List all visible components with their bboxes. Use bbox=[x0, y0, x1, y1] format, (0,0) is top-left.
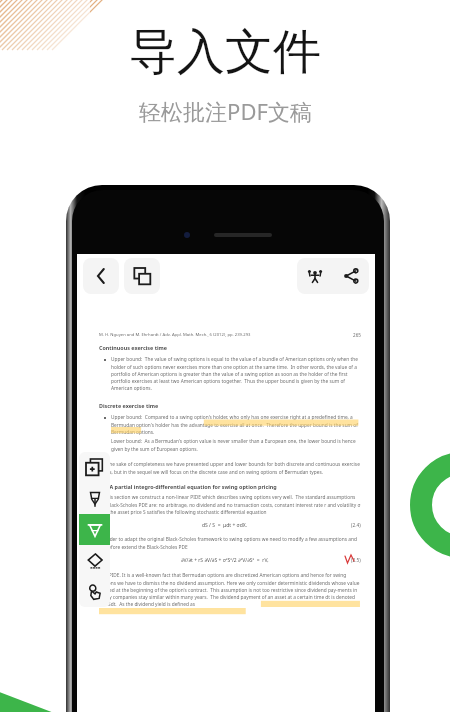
button[interactable]: Highlighter bbox=[79, 514, 110, 545]
button[interactable]: Share bbox=[333, 258, 369, 294]
staticText: ∂V/∂t + rS ∂V/∂S + σ²S²/2 ∂²V/∂S² = rV, bbox=[181, 557, 269, 564]
staticText: Continuous exercise time bbox=[99, 344, 168, 351]
staticText: (2.4) bbox=[351, 522, 361, 529]
button[interactable]: Pen bbox=[79, 483, 110, 514]
button[interactable]: Select bbox=[79, 576, 110, 607]
button[interactable]: Collaborators bbox=[297, 258, 333, 294]
staticText: dS / S = μdt + σdX. bbox=[202, 522, 247, 529]
button[interactable]: Back bbox=[83, 258, 119, 294]
staticText: In this section we construct a non-linea… bbox=[99, 494, 361, 515]
staticText: to a PIDE. It is a well-known fact that … bbox=[99, 572, 361, 607]
staticText: In order to adapt the original Black-Sch… bbox=[99, 536, 361, 550]
staticText: (2.5) bbox=[351, 557, 361, 564]
staticText: M. H. Nguyen and M. Ehrhardt / Adv. Appl… bbox=[99, 332, 251, 338]
staticText: Discrete exercise time bbox=[99, 402, 159, 409]
staticText: For the sake of completeness we have pre… bbox=[99, 461, 361, 475]
staticText: 2.3 A partial integro-differential equat… bbox=[99, 483, 277, 490]
staticText: 导入文件 bbox=[129, 22, 321, 82]
button[interactable]: Eraser bbox=[79, 545, 110, 576]
staticText: Upper bound: The value of swing options … bbox=[111, 356, 361, 391]
button[interactable]: Add page bbox=[79, 452, 110, 483]
staticText: Lower bound: As a Bermudan's option valu… bbox=[111, 438, 361, 452]
staticText: Upper bound: Compared to a swing option'… bbox=[111, 414, 361, 435]
staticText: 轻松批注PDF文稿 bbox=[139, 96, 312, 126]
button[interactable]: Pages bbox=[124, 258, 160, 294]
staticText: 265 bbox=[353, 332, 361, 338]
